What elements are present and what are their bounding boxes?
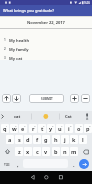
staticText: , — [17, 161, 19, 168]
button[interactable]: r — [29, 124, 37, 133]
staticText: x — [26, 148, 30, 155]
button[interactable]: m — [70, 147, 78, 156]
staticText: What brings you gratitude? — [3, 8, 55, 13]
button[interactable]: j — [61, 135, 69, 144]
staticText: My family — [9, 47, 29, 52]
button[interactable] — [12, 94, 21, 103]
button[interactable]: c — [33, 147, 41, 156]
staticText: . — [73, 161, 75, 168]
button[interactable]: . — [70, 159, 78, 169]
staticText: v — [44, 148, 48, 155]
button[interactable]: k — [70, 135, 78, 144]
staticText: d — [26, 136, 30, 143]
button[interactable]: h — [52, 135, 60, 144]
staticText: q — [3, 125, 7, 132]
staticText: ?123 — [4, 163, 10, 166]
button[interactable] — [80, 147, 92, 156]
button[interactable]: b — [52, 147, 60, 156]
staticText: November 22, 2017 — [27, 20, 65, 25]
staticText: 9 — [80, 124, 82, 127]
staticText: p — [86, 125, 90, 132]
staticText: r — [32, 125, 35, 132]
button[interactable]: d — [24, 135, 32, 144]
staticText: h — [54, 136, 58, 143]
button[interactable]: t — [38, 124, 46, 133]
staticText: 2 — [15, 124, 17, 127]
button[interactable]: f — [33, 135, 41, 144]
staticText: SUBMIT — [41, 97, 53, 101]
staticText: a — [8, 136, 12, 143]
button[interactable] — [1, 147, 13, 156]
staticText: 0 — [89, 124, 91, 127]
staticText: k — [72, 136, 76, 143]
button[interactable]: l — [79, 135, 87, 144]
button[interactable] — [28, 173, 37, 182]
staticText: 3 — [4, 56, 6, 60]
button[interactable]: q — [1, 124, 9, 133]
button[interactable] — [81, 94, 90, 103]
staticText: o — [77, 125, 81, 132]
staticText: 5 — [43, 124, 45, 127]
staticText: w — [12, 125, 17, 132]
staticText: e — [21, 125, 25, 132]
staticText: 1 — [6, 124, 8, 127]
button[interactable]: x — [24, 147, 32, 156]
staticText: b — [54, 148, 58, 155]
button[interactable]: w — [10, 124, 18, 133]
staticText: 9:26 — [84, 1, 90, 5]
button[interactable]: z — [15, 147, 23, 156]
staticText: l — [82, 136, 84, 143]
staticText: z — [18, 148, 21, 155]
button[interactable]: i — [65, 124, 73, 133]
staticText: 4 — [34, 124, 36, 127]
button[interactable] — [56, 173, 65, 182]
button[interactable]: 2 — [0, 45, 92, 53]
button[interactable]: SUBMIT — [29, 94, 64, 103]
button[interactable]: s — [15, 135, 23, 144]
button[interactable] — [70, 94, 79, 103]
button[interactable]: , — [14, 159, 22, 169]
button[interactable]: p — [84, 124, 92, 133]
button[interactable]: a — [6, 135, 14, 144]
staticText: 6 — [52, 124, 54, 127]
button[interactable]: cat — [14, 114, 21, 119]
staticText: n — [63, 148, 67, 155]
staticText: 1 — [4, 38, 6, 42]
button[interactable]: Cat — [65, 114, 72, 119]
button[interactable]: o — [75, 124, 83, 133]
button[interactable]: e — [19, 124, 27, 133]
staticText: My health — [9, 38, 30, 43]
staticText: My cat — [9, 56, 23, 61]
button[interactable] — [2, 94, 11, 103]
staticText: 8 — [70, 124, 72, 127]
button[interactable]: g — [42, 135, 50, 144]
button[interactable]: u — [56, 124, 64, 133]
staticText: g — [44, 136, 48, 143]
button[interactable]: v — [42, 147, 50, 156]
staticText: s — [18, 136, 21, 143]
staticText: u — [58, 125, 62, 132]
button[interactable]: 3 — [0, 54, 92, 62]
staticText: j — [64, 136, 66, 143]
staticText: t — [41, 125, 44, 132]
staticText: c — [36, 148, 39, 155]
staticText: y — [49, 125, 53, 132]
staticText: i — [68, 125, 70, 132]
staticText: f — [36, 136, 39, 143]
staticText: 7 — [61, 124, 63, 127]
button[interactable]: n — [61, 147, 69, 156]
button[interactable]: y — [47, 124, 55, 133]
staticText: m — [71, 148, 77, 155]
button[interactable] — [79, 159, 89, 169]
button[interactable]: ?123 — [1, 159, 13, 169]
button[interactable] — [42, 173, 51, 182]
staticText: 2 — [4, 47, 6, 51]
staticText: 3 — [24, 124, 26, 127]
button[interactable]: 1 — [0, 36, 92, 44]
